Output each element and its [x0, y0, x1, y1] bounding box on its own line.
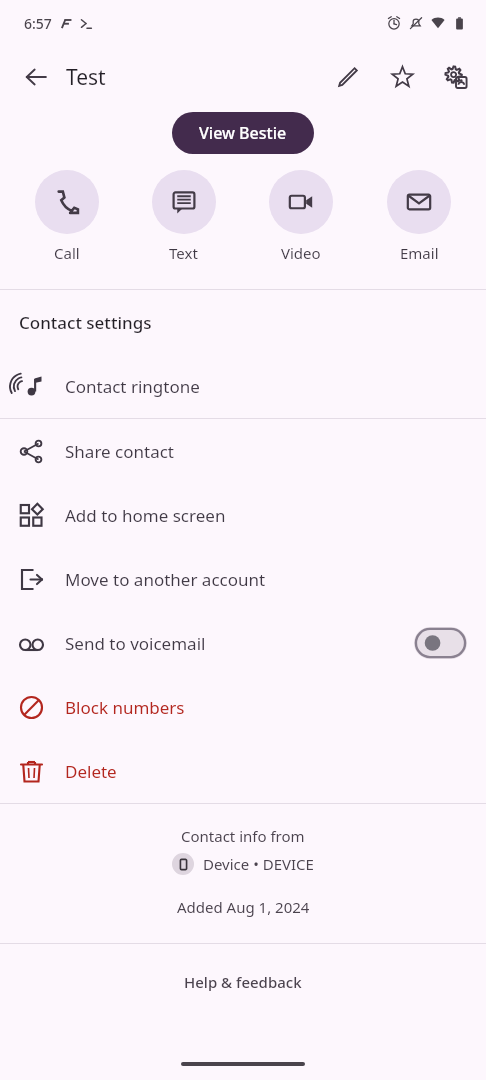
- staticText: Call: [54, 243, 80, 263]
- staticText: Contact settings: [19, 311, 152, 334]
- staticText: View Bestie: [199, 122, 287, 144]
- button[interactable]: Edit: [326, 55, 370, 99]
- staticText: Move to another account: [65, 568, 266, 591]
- button[interactable]: Contact settings: [434, 55, 478, 99]
- button[interactable]: Help & feedback: [0, 944, 486, 1020]
- button[interactable]: Add to home screen: [0, 483, 486, 547]
- button[interactable]: Send to voicemail: [0, 611, 486, 675]
- staticText: Device • DEVICE: [203, 854, 314, 874]
- staticText: 6:57: [24, 14, 52, 33]
- staticText: Text: [169, 243, 198, 263]
- staticText: Block numbers: [65, 696, 185, 719]
- button[interactable]: Text: [125, 168, 242, 265]
- button[interactable]: Back: [14, 55, 58, 99]
- button[interactable]: Block numbers: [0, 675, 486, 739]
- staticText: Contact ringtone: [65, 375, 200, 398]
- staticText: Help & feedback: [184, 972, 302, 992]
- button[interactable]: Call: [8, 168, 125, 265]
- button[interactable]: Add to favorites: [380, 55, 424, 99]
- button[interactable]: Video: [242, 168, 360, 265]
- staticText: Add to home screen: [65, 504, 226, 527]
- staticText: Added Aug 1, 2024: [177, 897, 310, 917]
- button[interactable]: Move to another account: [0, 547, 486, 611]
- button[interactable]: Delete: [0, 739, 486, 803]
- staticText: Send to voicemail: [65, 632, 206, 655]
- staticText: Email: [400, 243, 439, 263]
- button[interactable]: View Bestie: [172, 112, 314, 154]
- button[interactable]: Contact ringtone: [0, 354, 486, 418]
- staticText: Test: [66, 63, 106, 92]
- staticText: Delete: [65, 760, 117, 783]
- button[interactable]: Share contact: [0, 419, 486, 483]
- staticText: Video: [281, 243, 321, 263]
- staticText: Share contact: [65, 440, 174, 463]
- button[interactable]: Email: [360, 168, 478, 265]
- staticText: Contact info from: [181, 826, 305, 846]
